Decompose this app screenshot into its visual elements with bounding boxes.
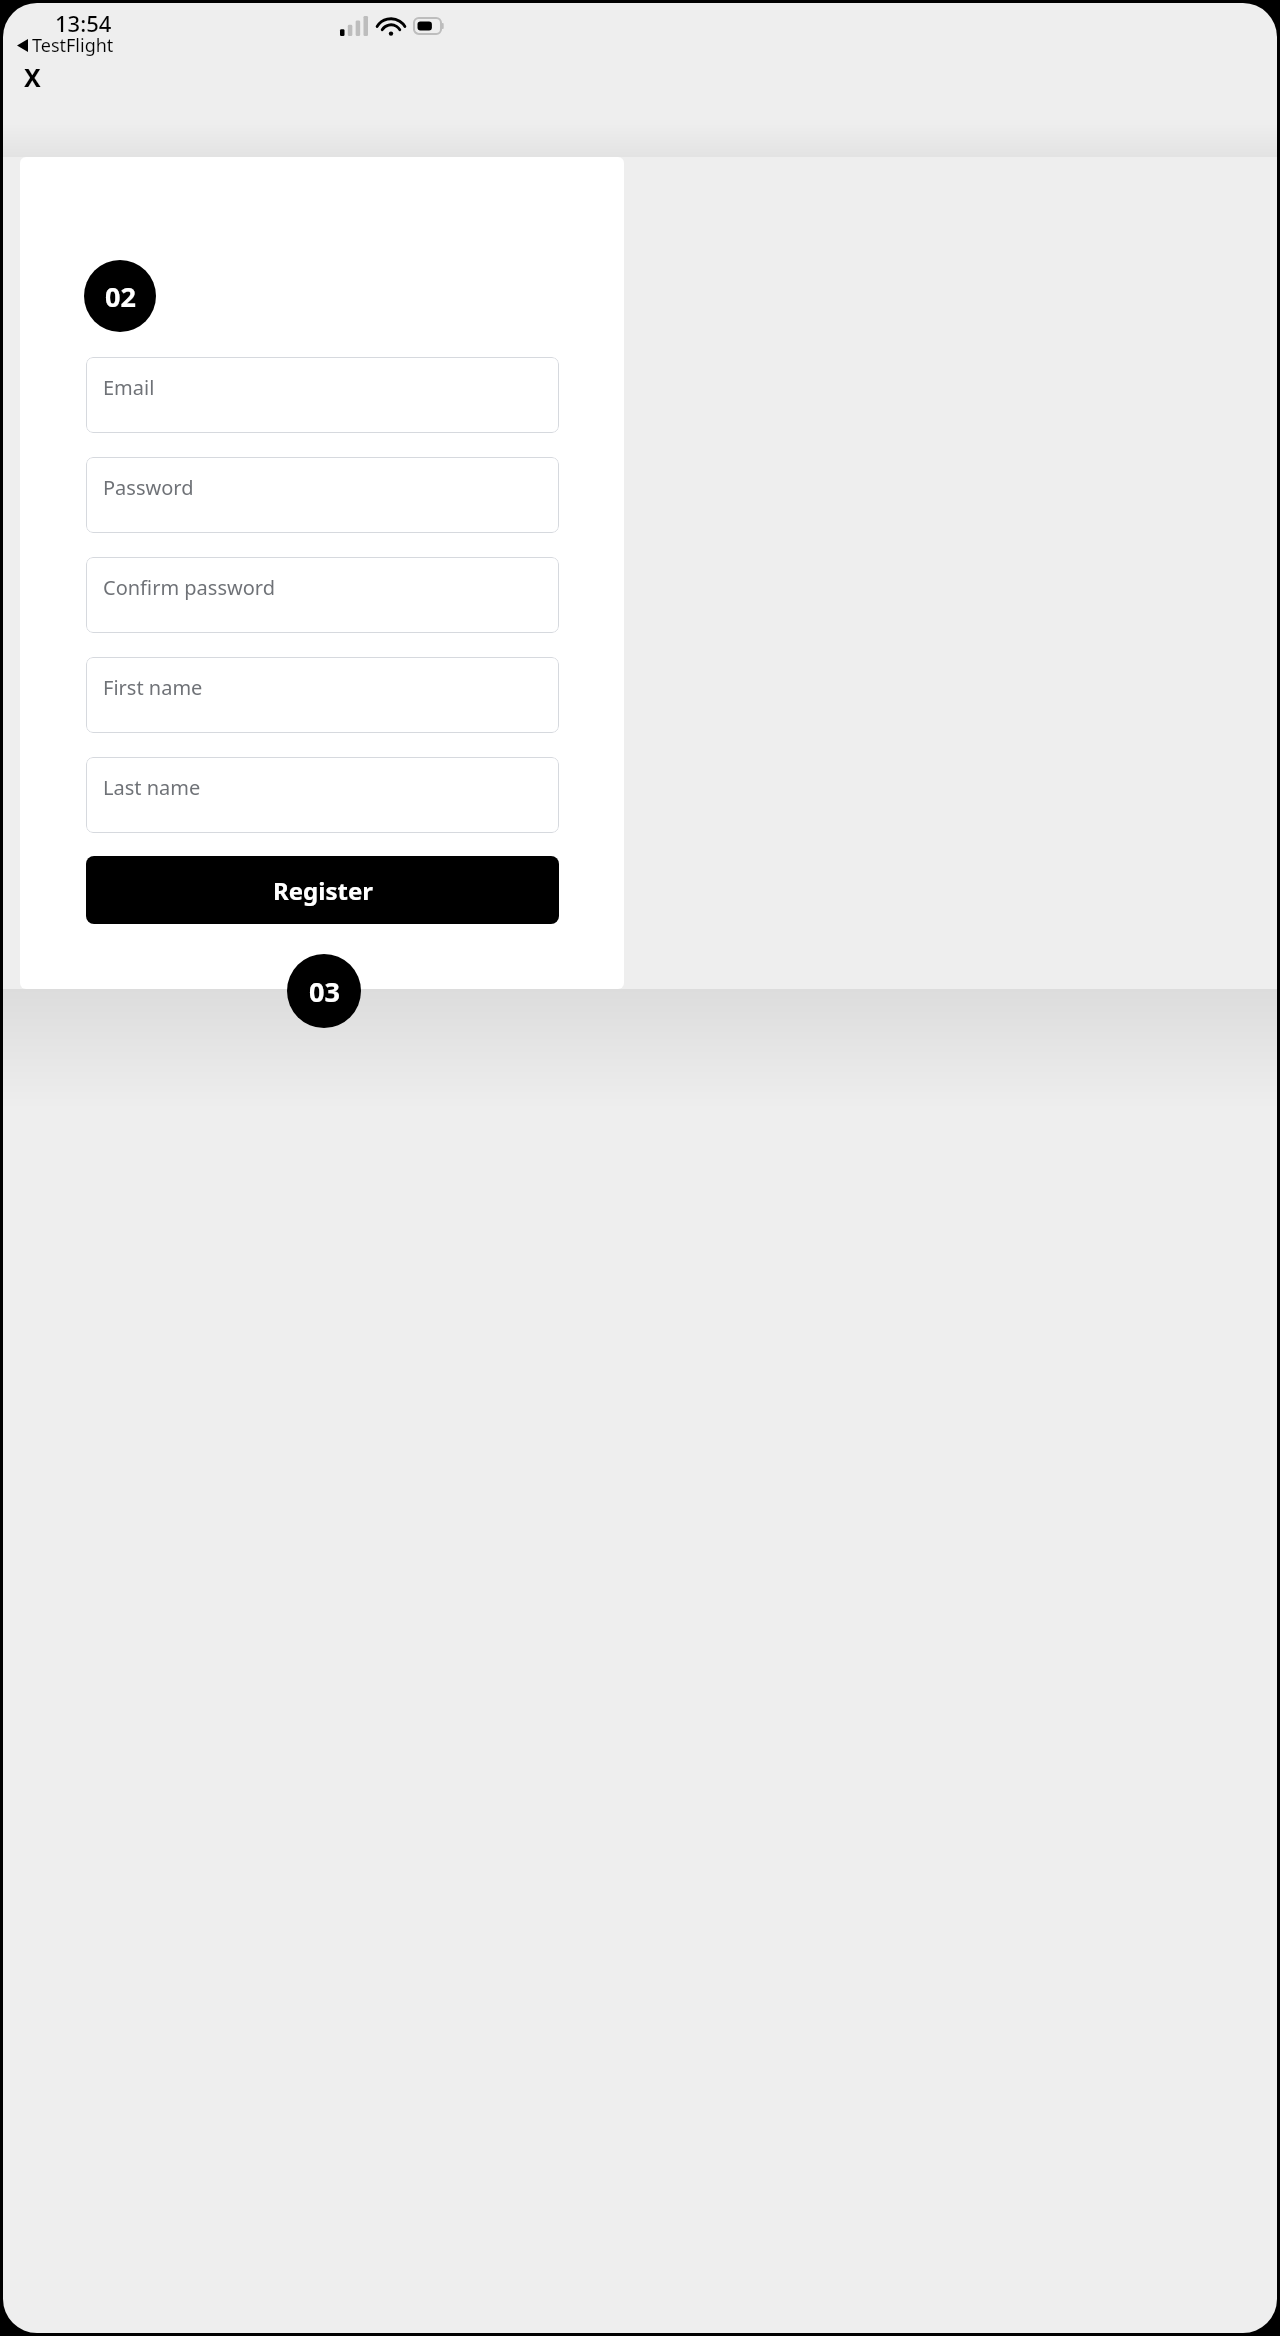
staticText: Register [273,874,373,907]
staticText: TestFlight [32,33,114,57]
staticText: First name [103,674,203,701]
staticText: Email [103,374,155,401]
staticText: Password [103,474,194,501]
staticText: Confirm password [103,574,275,601]
button[interactable]: Last name [86,757,559,833]
button[interactable]: 02 [84,260,156,332]
staticText: 02 [105,278,136,315]
button[interactable]: 03 [287,954,361,1028]
button[interactable]: TestFlight [15,33,120,57]
staticText: Last name [103,774,201,801]
button[interactable]: Email [86,357,559,433]
staticText: X [24,60,41,94]
button[interactable]: Close [11,56,53,98]
staticText: 13:54 [55,8,112,38]
button[interactable]: Confirm password [86,557,559,633]
staticText: 03 [309,973,340,1010]
button[interactable]: First name [86,657,559,733]
button[interactable]: Password [86,457,559,533]
button[interactable]: Register [86,856,559,924]
